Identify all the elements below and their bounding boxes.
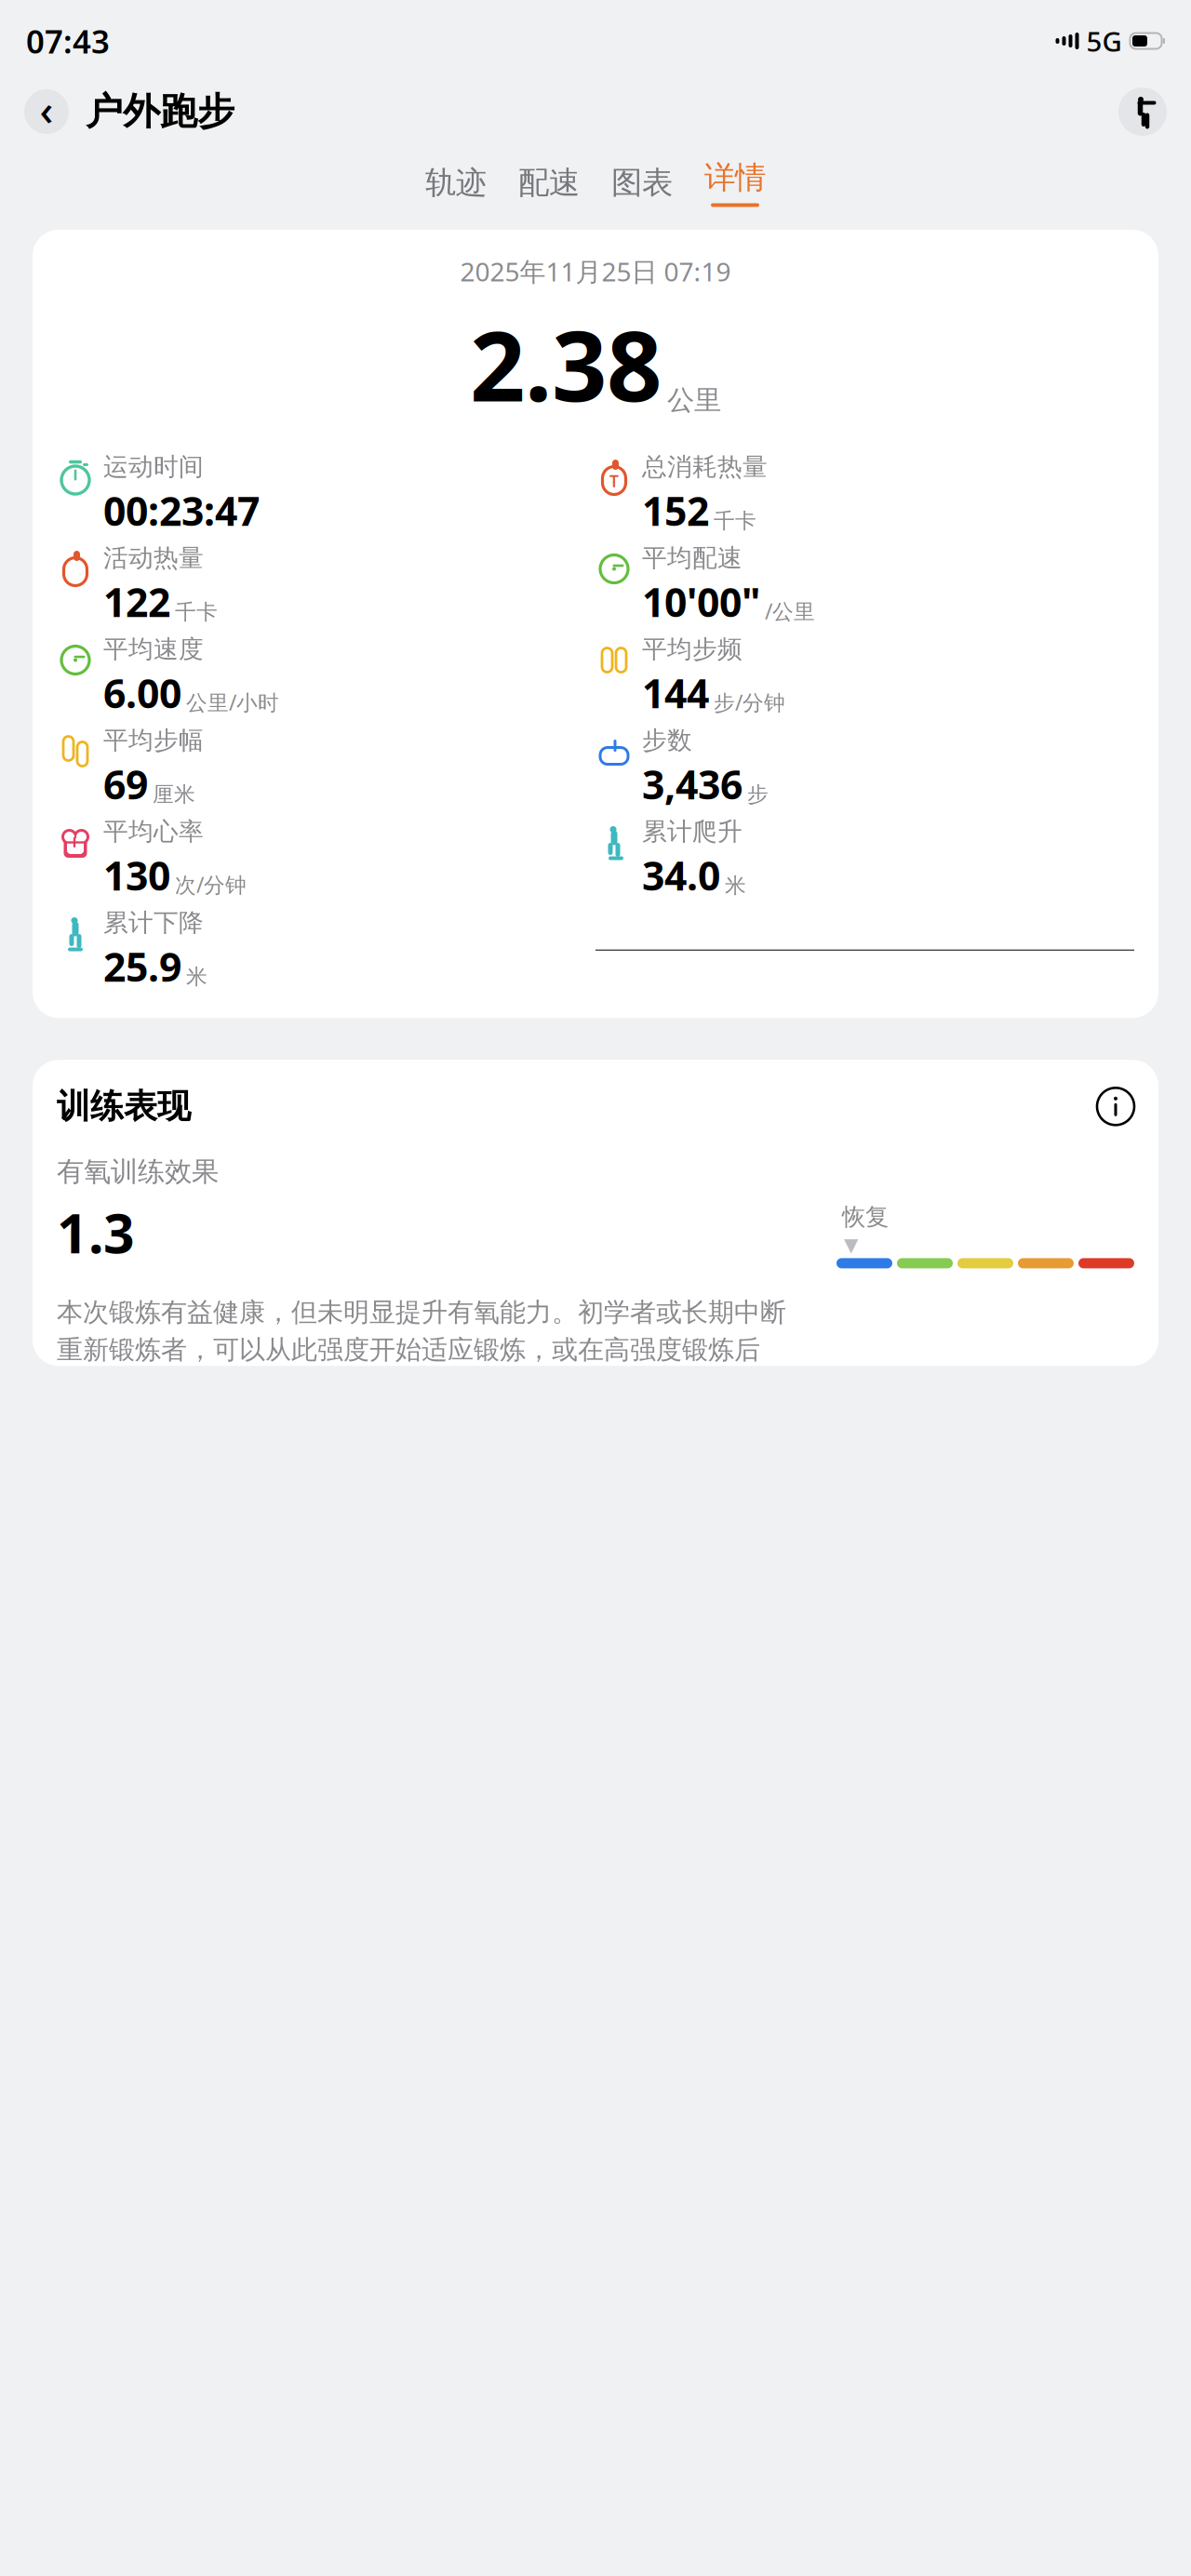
staticText: 步数	[642, 725, 692, 756]
staticText: 累计爬升	[642, 816, 743, 847]
staticText: 6.00	[103, 666, 181, 719]
staticText: 详情	[704, 159, 766, 197]
staticText: 轨迹	[425, 164, 487, 202]
staticText: 步/分钟	[714, 688, 785, 716]
staticText: 图表	[611, 164, 673, 202]
staticText: 累计下降	[103, 908, 204, 938]
staticText: 平均心率	[103, 816, 204, 847]
staticText: 00:23:47	[103, 484, 260, 537]
staticText: 米	[186, 964, 207, 990]
staticText: 07:43	[26, 20, 110, 62]
staticText: 户外跑步	[86, 89, 234, 134]
staticText: 重新锻炼者，可以从此强度开始适应锻炼，或在高强度锻炼后	[57, 1334, 760, 1366]
staticText: 公里	[667, 383, 721, 417]
staticText: 2025年11月25日 07:19	[460, 254, 731, 288]
button[interactable]: 详情	[689, 159, 782, 207]
staticText: 训练表现	[57, 1086, 191, 1127]
staticText: 平均速度	[103, 634, 204, 665]
staticText: 次/分钟	[175, 871, 247, 899]
staticText: 25.9	[103, 940, 181, 993]
staticText: 总消耗热量	[642, 452, 768, 482]
staticText: 千卡	[175, 599, 218, 625]
staticText: 122	[103, 575, 170, 628]
staticText: 1.3	[57, 1196, 135, 1268]
staticText: 5G	[1086, 23, 1122, 59]
staticText: 34.0	[642, 849, 720, 901]
staticText: 配速	[518, 164, 580, 202]
staticText: 本次锻炼有益健康，但未明显提升有氧能力。初学者或长期中断	[57, 1296, 786, 1328]
button[interactable]: 配速	[502, 158, 595, 207]
staticText: 3,436	[642, 758, 743, 810]
staticText: ▼	[844, 1234, 858, 1255]
staticText: 恢复	[842, 1203, 889, 1231]
staticText: 152	[642, 484, 709, 537]
staticText: 厘米	[153, 782, 195, 807]
staticText: /公里	[765, 597, 815, 625]
staticText: 千卡	[714, 508, 756, 534]
staticText: 平均步幅	[103, 725, 204, 756]
staticText: 144	[642, 666, 709, 719]
staticText: 130	[103, 849, 170, 901]
button[interactable]: 轨迹	[409, 158, 502, 207]
staticText: ‹	[40, 81, 54, 137]
staticText: 公里/小时	[186, 688, 279, 716]
button[interactable]: 说明	[1097, 1088, 1134, 1125]
staticText: 米	[725, 873, 746, 899]
staticText: 有氧训练效果	[57, 1155, 219, 1188]
staticText: 10'00"	[642, 575, 760, 628]
staticText: 平均配速	[642, 543, 743, 573]
staticText: 步	[747, 782, 769, 807]
staticText: 2.38	[470, 300, 662, 428]
staticText: 运动时间	[103, 452, 204, 482]
button[interactable]: 返回	[24, 81, 69, 142]
staticText: 69	[103, 758, 148, 810]
staticText: 活动热量	[103, 543, 204, 573]
button[interactable]: 图表	[595, 158, 689, 207]
button[interactable]: 运动类型	[1118, 87, 1167, 136]
staticText: T	[609, 470, 619, 492]
staticText: 平均步频	[642, 634, 743, 665]
